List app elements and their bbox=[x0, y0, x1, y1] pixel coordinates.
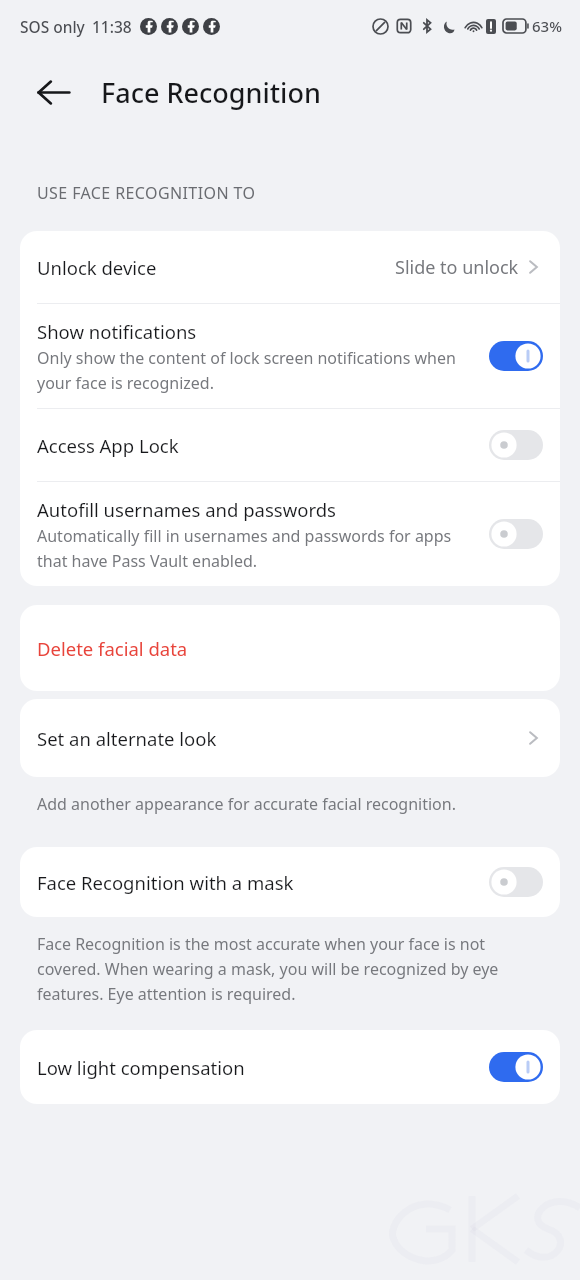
staticText: Low light compensation bbox=[37, 1055, 245, 1080]
staticText: Show notifications bbox=[37, 319, 197, 344]
button[interactable]: Show notifications bbox=[20, 304, 560, 408]
button[interactable]: Low light compensation bbox=[20, 1030, 560, 1104]
button[interactable]: Autofill usernames and passwords bbox=[20, 482, 560, 586]
staticText: Face Recognition bbox=[101, 74, 321, 111]
button[interactable]: Set an alternate look bbox=[20, 699, 560, 777]
button[interactable]: Face Recognition with a mask bbox=[20, 847, 560, 917]
staticText: USE FACE RECOGNITION TO bbox=[37, 182, 256, 204]
staticText: Face Recognition is the most accurate wh… bbox=[37, 933, 543, 1004]
button[interactable]: Low light compensation bbox=[489, 1052, 543, 1082]
button[interactable]: Access App Lock bbox=[489, 430, 543, 460]
staticText: Delete facial data bbox=[37, 636, 188, 661]
staticText: 63% bbox=[532, 16, 562, 36]
button[interactable]: Autofill usernames and passwords bbox=[489, 519, 543, 549]
button[interactable]: Show notifications bbox=[489, 341, 543, 371]
staticText: Slide to unlock bbox=[395, 255, 519, 280]
button[interactable]: Face Recognition with a mask bbox=[489, 867, 543, 897]
staticText: SOS only bbox=[20, 16, 85, 37]
staticText: Add another appearance for accurate faci… bbox=[37, 793, 456, 815]
staticText: Autofill usernames and passwords bbox=[37, 497, 336, 522]
button[interactable]: Unlock device bbox=[20, 231, 560, 303]
staticText: 11:38 bbox=[92, 16, 132, 37]
staticText: Access App Lock bbox=[37, 433, 179, 458]
button[interactable]: Back bbox=[30, 69, 76, 115]
staticText: Unlock device bbox=[37, 255, 157, 280]
staticText: Automatically fill in usernames and pass… bbox=[37, 525, 475, 571]
staticText: Only show the content of lock screen not… bbox=[37, 347, 475, 393]
button[interactable]: Delete facial data bbox=[20, 605, 560, 691]
staticText: Set an alternate look bbox=[37, 726, 217, 751]
staticText: Face Recognition with a mask bbox=[37, 870, 294, 895]
button[interactable]: Access App Lock bbox=[20, 409, 560, 481]
